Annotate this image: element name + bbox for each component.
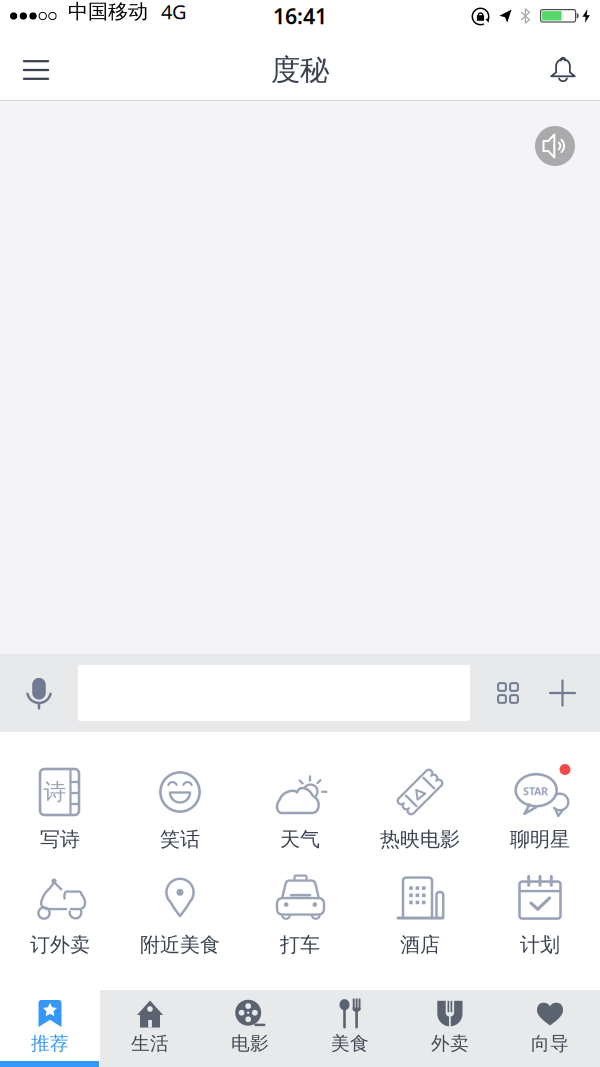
- button[interactable]: STAR: [480, 763, 600, 852]
- button[interactable]: Notifications: [550, 40, 600, 99]
- button[interactable]: 打车: [240, 869, 360, 957]
- staticText: 向导: [531, 1032, 569, 1055]
- staticText: 写诗: [40, 827, 80, 852]
- button[interactable]: Menu: [0, 42, 48, 98]
- staticText: 酒店: [400, 933, 440, 957]
- staticText: 4G: [161, 0, 187, 25]
- staticText: 美食: [331, 1032, 369, 1055]
- button[interactable]: More: [519, 680, 575, 705]
- button[interactable]: 天气: [240, 763, 360, 852]
- staticText: STAR: [523, 784, 548, 798]
- staticText: 电影: [231, 1032, 269, 1055]
- staticText: 度秘: [271, 52, 329, 88]
- staticText: 热映电影: [380, 827, 460, 852]
- button[interactable]: 推荐: [0, 990, 100, 1067]
- staticText: 生活: [131, 1032, 169, 1055]
- button[interactable]: 酒店: [360, 869, 480, 957]
- staticText: 订外卖: [30, 933, 90, 957]
- button[interactable]: 诗: [0, 763, 120, 852]
- button[interactable]: 外卖: [400, 990, 500, 1067]
- staticText: 打车: [280, 933, 320, 957]
- staticText: 中国移动: [68, 0, 148, 24]
- button[interactable]: 计划: [480, 869, 600, 957]
- button[interactable]: 生活: [100, 990, 200, 1067]
- button[interactable]: 笑话: [120, 763, 240, 852]
- button[interactable]: 电影: [200, 990, 300, 1067]
- button[interactable]: Shortcuts: [470, 682, 519, 704]
- button[interactable]: 向导: [500, 990, 600, 1067]
- staticText: 计划: [520, 933, 560, 957]
- staticText: 外卖: [431, 1032, 469, 1055]
- staticText: 推荐: [31, 1032, 69, 1055]
- staticText: 附近美食: [140, 933, 220, 957]
- staticText: 诗: [43, 778, 66, 806]
- staticText: 笑话: [160, 827, 200, 852]
- button[interactable]: 附近美食: [120, 869, 240, 957]
- button[interactable]: Voice input: [0, 677, 78, 709]
- staticText: 天气: [280, 827, 320, 852]
- button[interactable]: 美食: [300, 990, 400, 1067]
- button[interactable]: Mute voice: [535, 126, 575, 166]
- button[interactable]: 订外卖: [0, 869, 120, 957]
- staticText: 聊明星: [510, 827, 570, 852]
- button[interactable]: 热映电影: [360, 763, 480, 852]
- staticText: 16:41: [273, 2, 327, 30]
